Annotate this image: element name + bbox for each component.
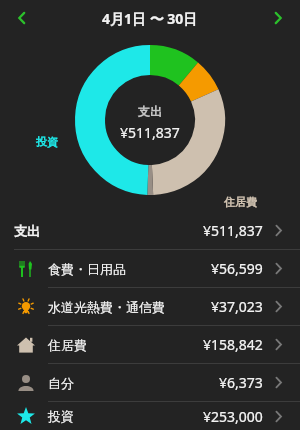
staticText: ¥511,837	[120, 123, 180, 142]
staticText: 住居費	[48, 337, 87, 353]
button[interactable]: 支出	[0, 212, 300, 249]
button[interactable]: 投資	[0, 402, 300, 430]
staticText: 住居費	[224, 195, 257, 209]
button[interactable]: 住居費	[0, 326, 300, 363]
staticText: 投資	[36, 135, 58, 149]
button[interactable]: Previous period	[0, 0, 44, 36]
staticText: ¥158,842	[203, 335, 263, 354]
button[interactable]: 食費・日用品	[0, 250, 300, 287]
staticText: 食費・日用品	[48, 261, 126, 277]
staticText: ¥37,023	[211, 297, 263, 316]
staticText: 4月1日 〜 30日	[102, 9, 198, 28]
staticText: 支出	[138, 104, 162, 119]
staticText: ¥56,599	[211, 259, 263, 278]
staticText: 自分	[48, 375, 74, 391]
staticText: 支出	[14, 223, 40, 239]
button[interactable]: 水道光熱費・通信費	[0, 288, 300, 325]
button[interactable]: 自分	[0, 364, 300, 401]
staticText: ¥6,373	[219, 373, 263, 392]
staticText: ¥511,837	[203, 221, 263, 240]
staticText: 水道光熱費・通信費	[48, 299, 165, 315]
staticText: ¥253,000	[203, 407, 263, 426]
button[interactable]: Next period	[256, 0, 300, 36]
staticText: 投資	[48, 408, 74, 424]
